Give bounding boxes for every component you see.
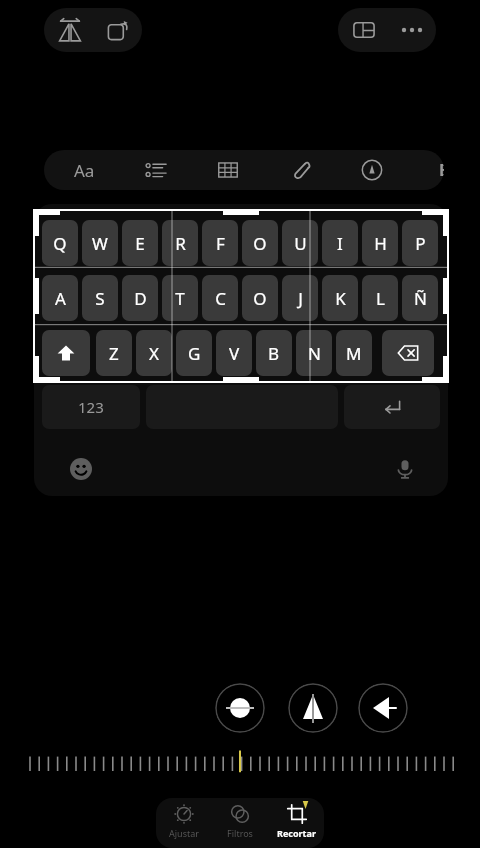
- button[interactable]: L: [362, 275, 398, 321]
- button[interactable]: Emoji: [64, 452, 98, 486]
- button[interactable]: H: [362, 220, 398, 266]
- staticText: 123: [78, 397, 104, 417]
- staticText: C: [215, 287, 226, 310]
- button[interactable]: O: [242, 275, 278, 321]
- button[interactable]: X: [136, 330, 172, 376]
- button[interactable]: Recortar: [268, 798, 324, 848]
- button[interactable]: Q: [42, 220, 78, 266]
- button[interactable]: Aa: [52, 150, 116, 190]
- staticText: L: [376, 287, 385, 310]
- staticText: U: [294, 232, 307, 255]
- staticText: W: [92, 232, 108, 255]
- staticText: D: [134, 287, 147, 310]
- staticText: Z: [109, 342, 119, 365]
- button[interactable]: V: [216, 330, 252, 376]
- staticText: B: [439, 159, 444, 181]
- button[interactable]: Z: [96, 330, 132, 376]
- staticText: T: [175, 287, 185, 310]
- staticText: M: [346, 342, 362, 365]
- staticText: S: [95, 287, 105, 310]
- button[interactable]: Shift: [42, 330, 90, 376]
- staticText: N: [308, 342, 321, 365]
- button[interactable]: E: [122, 220, 158, 266]
- button[interactable]: Mirror: [358, 683, 408, 733]
- button[interactable]: G: [176, 330, 212, 376]
- button[interactable]: list: [124, 150, 188, 190]
- button[interactable]: clip: [268, 150, 332, 190]
- button[interactable]: F: [202, 220, 238, 266]
- staticText: Recortar: [277, 827, 316, 839]
- button[interactable]: A: [42, 275, 78, 321]
- button[interactable]: Backspace: [382, 330, 434, 376]
- button[interactable]: D: [122, 275, 158, 321]
- button[interactable]: C: [202, 275, 238, 321]
- staticText: G: [188, 342, 201, 365]
- staticText: O: [253, 232, 267, 255]
- button[interactable]: table: [196, 150, 260, 190]
- staticText: V: [229, 342, 240, 365]
- button[interactable]: More options: [388, 8, 436, 52]
- staticText: F: [216, 232, 225, 255]
- button[interactable]: W: [82, 220, 118, 266]
- staticText: E: [135, 232, 145, 255]
- staticText: X: [149, 342, 159, 365]
- staticText: Aa: [74, 159, 95, 182]
- button[interactable]: Ajustar: [156, 798, 212, 848]
- button[interactable]: Voice input: [388, 452, 422, 486]
- button[interactable]: O: [242, 220, 278, 266]
- button[interactable]: Enter: [344, 385, 440, 429]
- button[interactable]: P: [402, 220, 438, 266]
- button[interactable]: U: [282, 220, 318, 266]
- button[interactable]: Aspect ratio: [340, 8, 388, 52]
- staticText: H: [374, 232, 387, 255]
- button[interactable]: B: [412, 150, 444, 190]
- staticText: Filtros: [227, 827, 253, 839]
- button[interactable]: M: [336, 330, 372, 376]
- button[interactable]: J: [282, 275, 318, 321]
- button[interactable]: Flip: [46, 8, 94, 52]
- button[interactable]: N: [296, 330, 332, 376]
- button[interactable]: K: [322, 275, 358, 321]
- button[interactable]: pen: [340, 150, 404, 190]
- staticText: Ñ: [414, 287, 427, 310]
- button[interactable]: B: [256, 330, 292, 376]
- button[interactable]: Rotate: [94, 8, 142, 52]
- button[interactable]: Flip vertical: [215, 683, 265, 733]
- button[interactable]: R: [162, 220, 198, 266]
- staticText: O: [253, 287, 267, 310]
- staticText: P: [415, 232, 426, 255]
- staticText: B: [268, 342, 280, 365]
- button[interactable]: Flip horizontal: [288, 683, 338, 733]
- staticText: A: [55, 287, 66, 310]
- button[interactable]: Filtros: [212, 798, 268, 848]
- button[interactable]: I: [322, 220, 358, 266]
- button[interactable]: Ñ: [402, 275, 438, 321]
- staticText: J: [298, 287, 303, 310]
- button[interactable]: T: [162, 275, 198, 321]
- staticText: Q: [53, 232, 67, 255]
- staticText: R: [175, 232, 186, 255]
- button[interactable]: 123: [42, 385, 140, 429]
- staticText: Ajustar: [169, 827, 199, 839]
- button[interactable]: S: [82, 275, 118, 321]
- staticText: K: [335, 287, 346, 310]
- staticText: I: [337, 232, 343, 255]
